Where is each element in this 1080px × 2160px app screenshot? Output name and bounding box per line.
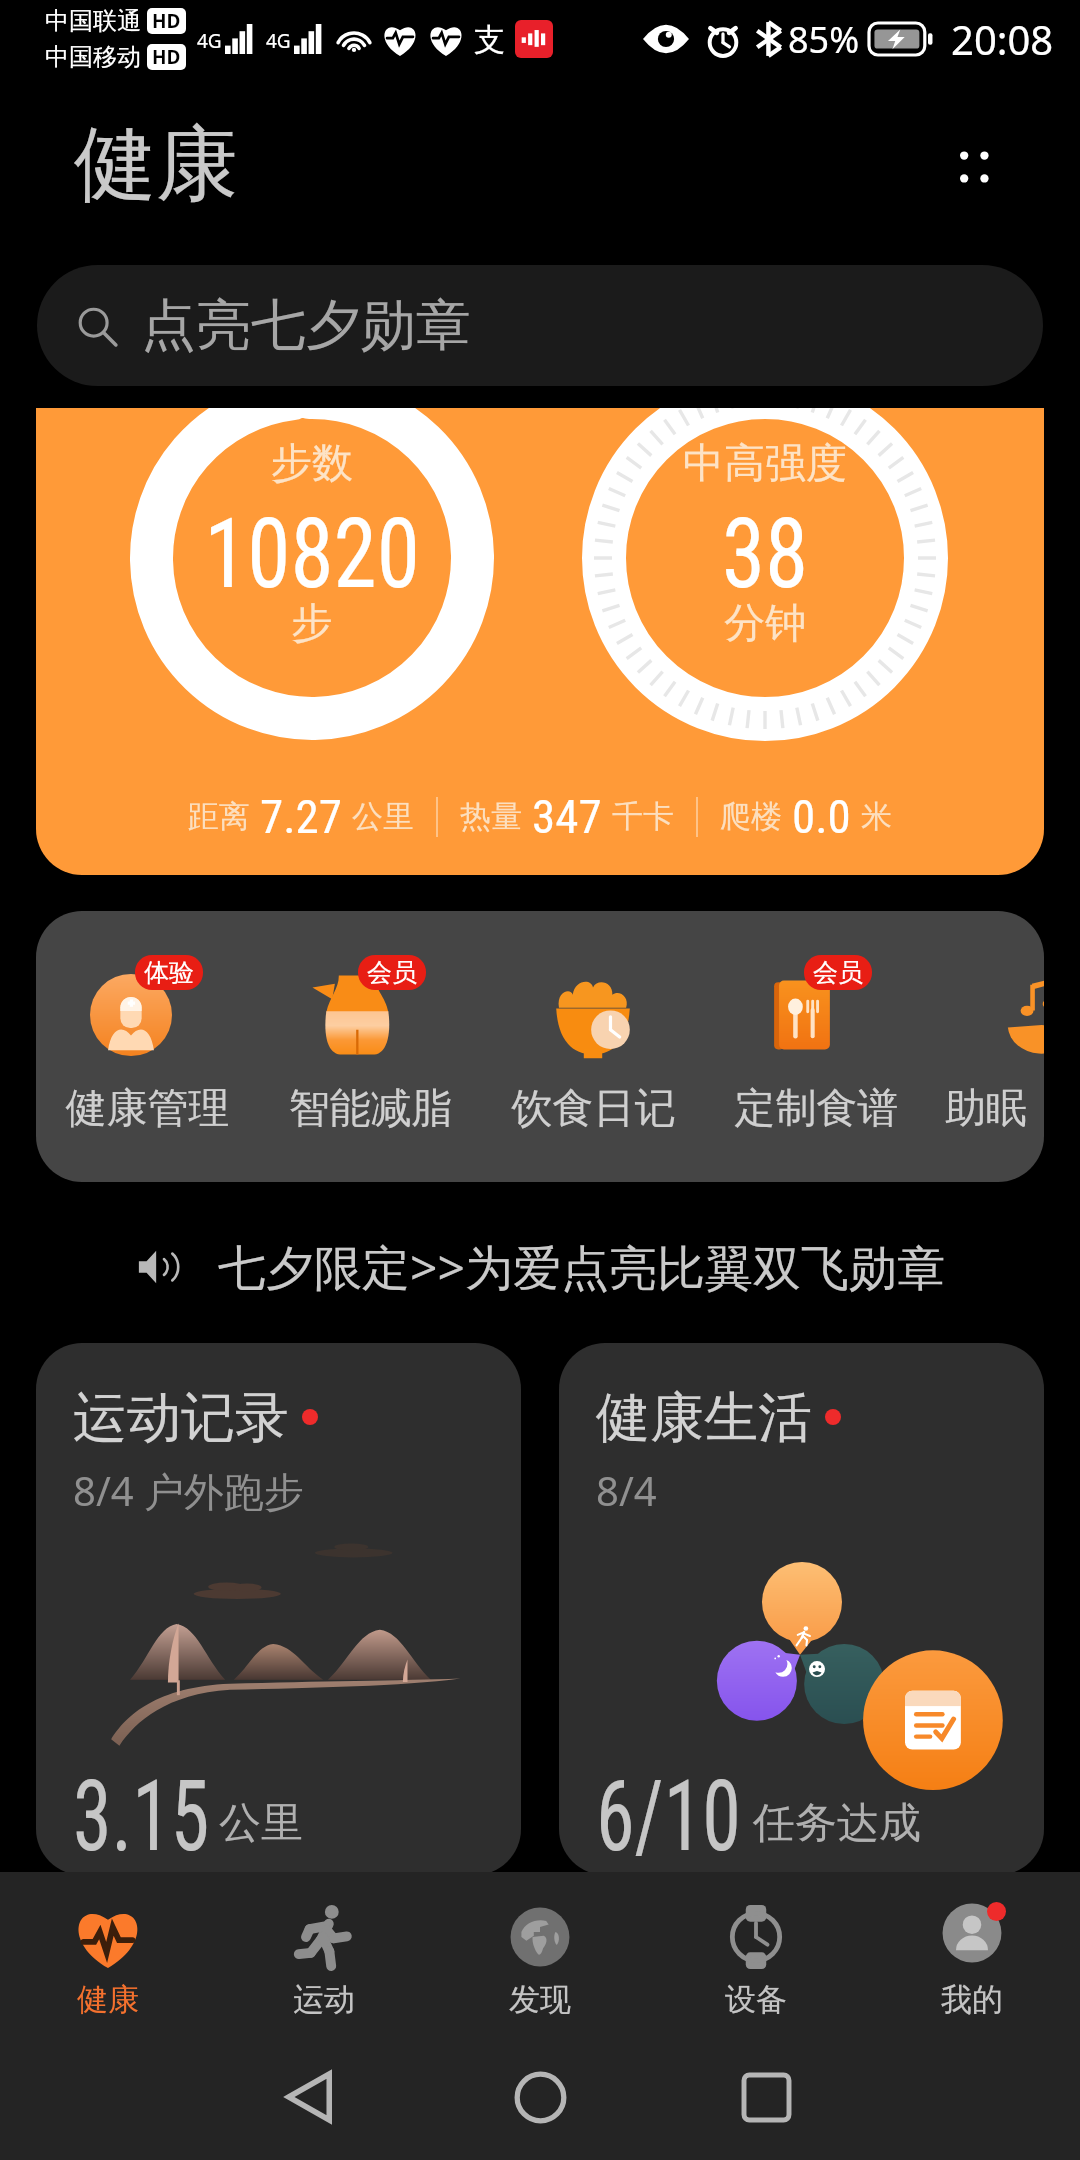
button[interactable]: 设备 <box>648 1872 864 2042</box>
staticText: 七夕限定>>为爱点亮比翼双飞勋章 <box>218 1234 945 1300</box>
staticText: 运动 <box>293 1980 355 2019</box>
button[interactable]: 助眠 <box>928 911 1044 1182</box>
staticText: 公里 <box>352 797 414 836</box>
staticText: 运动记录 <box>73 1384 289 1452</box>
staticText: 任务达成 <box>753 1797 921 1850</box>
button[interactable]: 发现 <box>432 1872 648 2042</box>
staticText: 智能减脂 <box>259 1083 482 1135</box>
staticText: 助眠 <box>928 1083 1044 1135</box>
staticText: HD <box>152 44 181 70</box>
staticText: 体验 <box>144 957 194 988</box>
staticText: HD <box>152 8 181 34</box>
staticText: 8/4 <box>596 1463 657 1517</box>
staticText: 中高强度 <box>565 438 965 490</box>
staticText: 米 <box>861 797 892 836</box>
staticText: 我的 <box>941 1980 1003 2019</box>
staticText: 中国移动 <box>45 42 141 72</box>
button[interactable]: 体验 <box>36 911 259 1182</box>
button[interactable]: 健康生活 <box>559 1343 1044 1875</box>
staticText: 定制食谱 <box>705 1083 928 1135</box>
button[interactable]: Home <box>498 2055 582 2139</box>
button[interactable]: 饮食日记 <box>482 911 705 1182</box>
staticText: 20:08 <box>951 12 1054 66</box>
staticText: 3.15 <box>73 1758 210 1874</box>
staticText: 热量 <box>460 797 522 836</box>
staticText: 10820 <box>132 497 492 611</box>
staticText: 点亮七夕勋章 <box>141 291 471 360</box>
button[interactable]: 点亮七夕勋章 <box>37 265 1043 386</box>
staticText: 健康 <box>74 113 238 216</box>
button[interactable]: 运动 <box>216 1872 432 2042</box>
button[interactable]: 运动记录 <box>36 1343 521 1875</box>
staticText: 347 <box>532 789 602 844</box>
staticText: 步数 <box>112 438 512 490</box>
staticText: 健康管理 <box>36 1083 259 1135</box>
button[interactable]: 会员 <box>705 911 928 1182</box>
staticText: 中国联通 <box>45 6 141 36</box>
staticText: 饮食日记 <box>482 1083 705 1135</box>
staticText: 公里 <box>219 1797 303 1850</box>
staticText: 4G <box>197 28 222 54</box>
staticText: 支 <box>474 20 505 59</box>
staticText: 距离 <box>188 797 250 836</box>
button[interactable]: 七夕限定>>为爱点亮比翼双飞勋章 <box>0 1228 1080 1306</box>
staticText: 会员 <box>813 957 863 988</box>
button[interactable]: Back <box>267 2055 351 2139</box>
button[interactable]: 我的 <box>864 1872 1080 2042</box>
staticText: 步 <box>112 598 512 650</box>
button[interactable]: Recents <box>724 2055 808 2139</box>
button[interactable]: More options <box>928 122 1018 212</box>
staticText: 6/10 <box>596 1758 741 1874</box>
staticText: 健康生活 <box>596 1384 812 1452</box>
staticText: 4G <box>266 28 291 54</box>
staticText: 设备 <box>725 1980 787 2019</box>
staticText: 0.0 <box>792 789 851 844</box>
staticText: 85% <box>788 15 860 64</box>
staticText: 千卡 <box>612 797 674 836</box>
staticText: 7.27 <box>260 789 342 844</box>
button[interactable]: 步数 <box>36 408 1044 875</box>
staticText: 38 <box>585 497 945 611</box>
staticText: 8/4 户外跑步 <box>73 1463 305 1518</box>
staticText: 发现 <box>509 1980 571 2019</box>
staticText: 分钟 <box>565 598 965 650</box>
button[interactable]: 会员 <box>259 911 482 1182</box>
staticText: 会员 <box>367 957 417 988</box>
staticText: 健康 <box>77 1980 139 2019</box>
button[interactable]: 健康 <box>0 1872 216 2042</box>
staticText: 爬楼 <box>720 797 782 836</box>
